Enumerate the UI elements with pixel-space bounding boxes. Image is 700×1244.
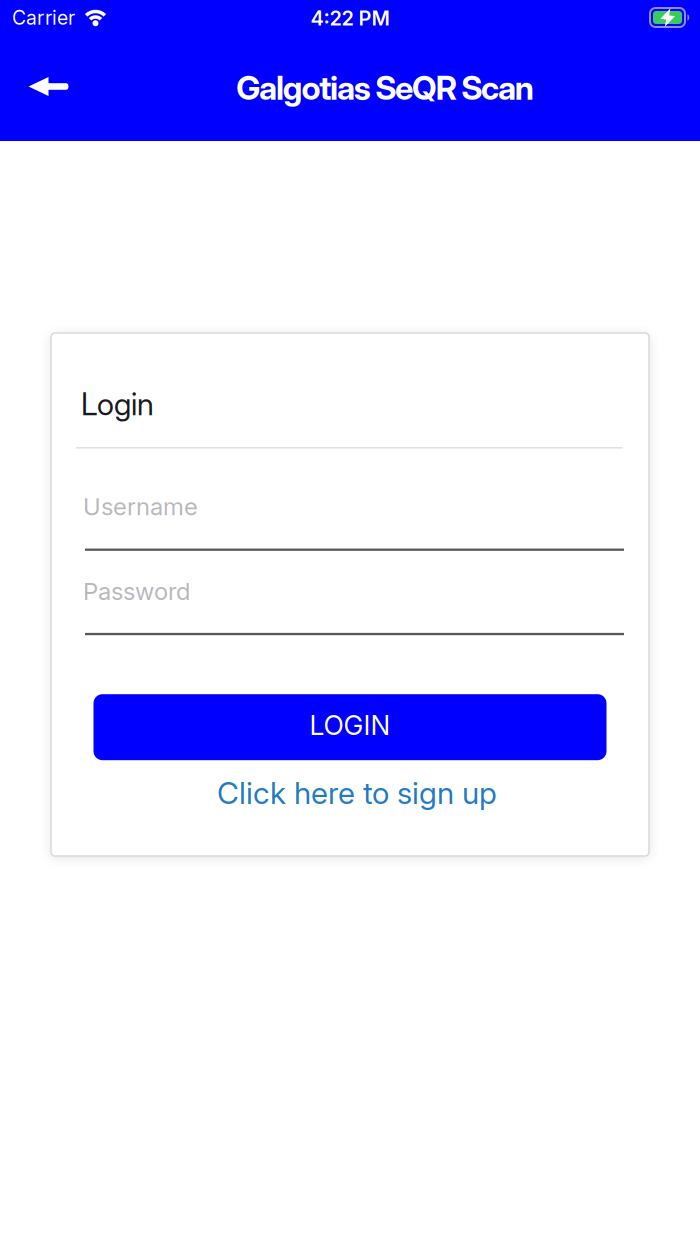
button[interactable]: Click here to sign up — [51, 775, 649, 811]
staticText: Galgotias SeQR Scan — [236, 68, 534, 108]
button[interactable]: Password — [51, 577, 649, 635]
staticText: Password — [83, 577, 190, 606]
button[interactable]: LOGIN — [93, 694, 606, 760]
button[interactable]: Username — [51, 492, 649, 551]
staticText: Login — [81, 385, 154, 423]
staticText: Carrier — [12, 6, 75, 29]
staticText: LOGIN — [309, 709, 390, 741]
button[interactable] — [0, 0, 68, 96]
staticText: Click here to sign up — [217, 775, 497, 811]
staticText: 4:22 PM — [310, 6, 389, 30]
staticText: Username — [83, 492, 198, 521]
